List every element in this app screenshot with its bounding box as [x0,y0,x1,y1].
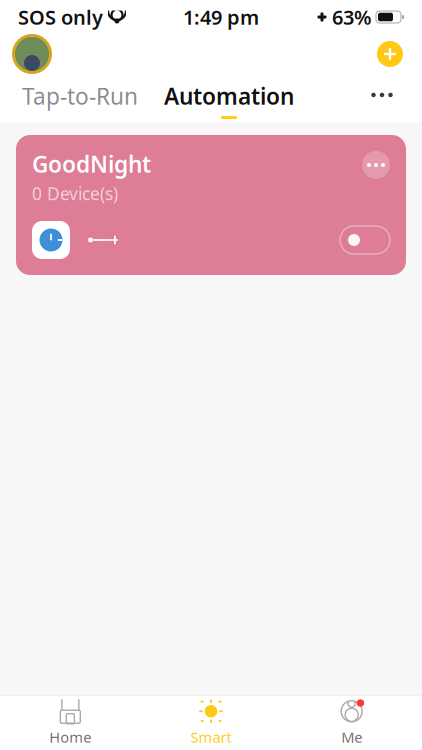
button[interactable]: Smart [141,693,281,750]
staticText: GoodNight [32,149,151,179]
staticText: Automation [164,81,294,111]
staticText: Me [341,727,362,747]
staticText: Home [49,727,91,747]
button[interactable]: More options [360,75,404,115]
staticText: SOS only [18,4,103,30]
button[interactable]: Me [281,693,422,750]
staticText: Tap-to-Run [22,81,138,111]
button[interactable]: Profile [10,32,54,76]
button[interactable]: Tap-to-Run [18,75,142,125]
button[interactable]: Automation [160,75,298,125]
button[interactable]: GoodNight [16,135,406,275]
staticText: 63% [332,4,372,30]
staticText: 0 Device(s) [32,182,118,205]
button[interactable]: Add [368,32,412,76]
button[interactable]: Home [0,693,141,750]
staticText: Smart [190,727,231,747]
staticText: 1:49 pm [183,4,259,30]
